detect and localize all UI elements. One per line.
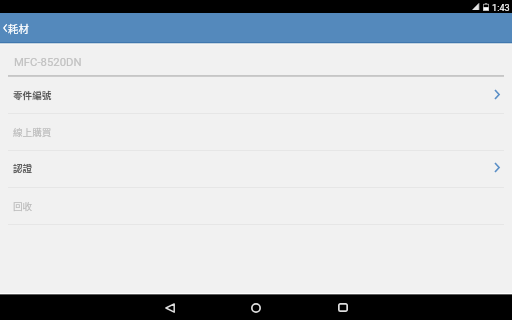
button[interactable]: Back: [148, 295, 192, 320]
button[interactable]: 回收: [0, 188, 512, 225]
staticText: 1:43: [492, 2, 510, 13]
button[interactable]: Recents: [321, 295, 365, 320]
staticText: MFC-8520DN: [14, 56, 82, 69]
button[interactable]: 線上購買: [0, 114, 512, 151]
button[interactable]: Back: [0, 13, 34, 43]
button[interactable]: MFC-8520DN: [0, 43, 512, 77]
button[interactable]: Home: [234, 295, 278, 320]
button[interactable]: 零件編號: [0, 77, 512, 115]
button[interactable]: 認證: [0, 151, 512, 188]
staticText: 耗材: [8, 21, 29, 36]
staticText: 認證: [13, 161, 33, 175]
staticText: 回收: [13, 199, 33, 213]
staticText: 零件編號: [13, 88, 52, 102]
staticText: 線上購買: [13, 125, 52, 139]
